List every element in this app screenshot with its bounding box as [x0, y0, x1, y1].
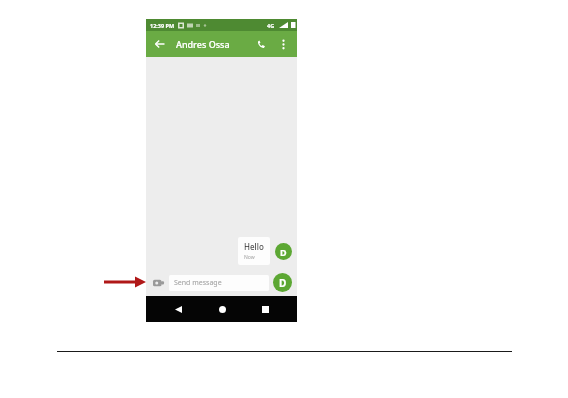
button[interactable]: Recent apps [254, 298, 276, 320]
staticText: Hello [244, 241, 264, 252]
button[interactable]: Home [211, 298, 233, 320]
button[interactable]: Send message [169, 275, 269, 291]
staticText: D [279, 276, 287, 290]
staticText: Send message [174, 278, 222, 288]
button[interactable]: Hello [238, 237, 270, 265]
button[interactable]: Contact avatar D [273, 273, 292, 292]
button[interactable]: Back [167, 298, 189, 320]
button[interactable]: Call [253, 36, 269, 52]
staticText: 4G [267, 22, 275, 29]
staticText: D [280, 246, 287, 258]
button[interactable]: More options [275, 36, 291, 52]
staticText: Andres Ossa [176, 38, 230, 50]
staticText: Now [244, 254, 255, 261]
button[interactable]: Contact avatar D [275, 243, 292, 260]
button[interactable]: Back [152, 36, 168, 52]
staticText: 12:39 PM [150, 22, 175, 29]
button[interactable]: Attach [151, 276, 165, 290]
